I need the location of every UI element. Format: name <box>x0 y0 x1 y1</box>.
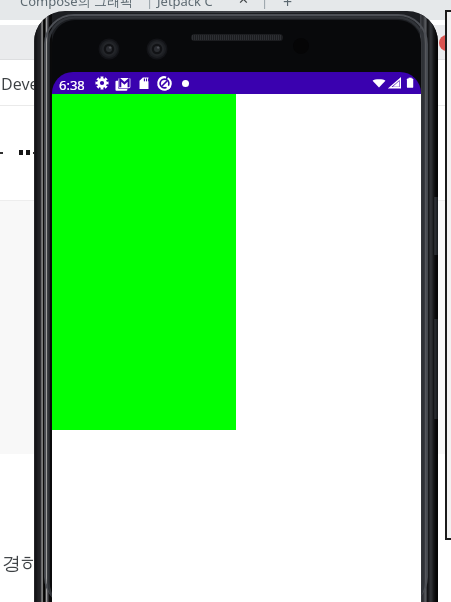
other: Do not disturb <box>157 76 172 91</box>
other: Battery <box>403 76 417 90</box>
other: Mobile signal <box>388 76 402 90</box>
staticText: 6:38 <box>59 76 85 94</box>
other: Settings <box>95 76 109 90</box>
staticText: 경하 <box>2 552 40 576</box>
staticText: Compose의 그래픽 <box>20 0 134 10</box>
other: Wi-Fi <box>372 76 386 90</box>
other: SD card <box>137 76 151 90</box>
staticText: ✕ <box>238 0 249 7</box>
other: Gmail <box>115 76 131 92</box>
staticText: Jetpack C <box>157 0 213 10</box>
staticText: Deve <box>1 73 39 95</box>
staticText: | <box>261 0 269 10</box>
staticText: | <box>146 0 154 10</box>
staticText: + <box>283 0 293 11</box>
